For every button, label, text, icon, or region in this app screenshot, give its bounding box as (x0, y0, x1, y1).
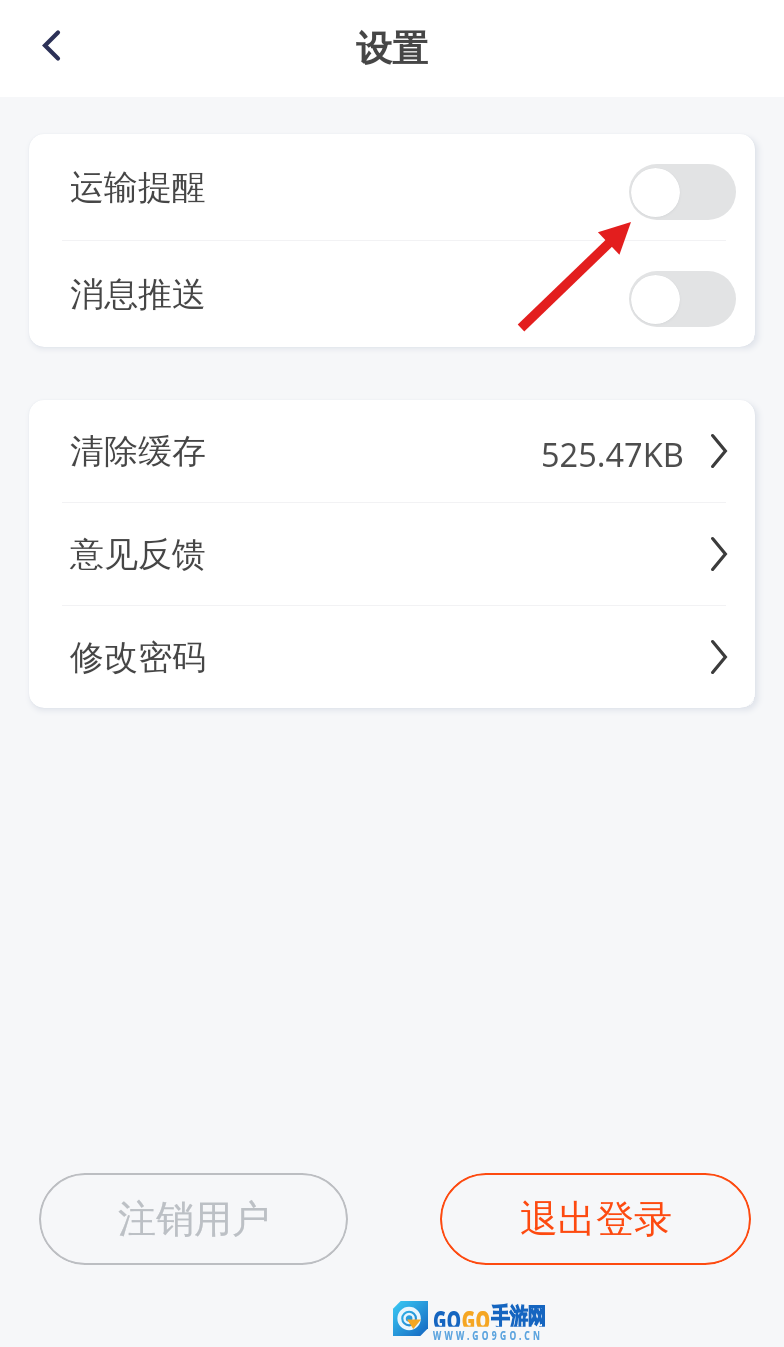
button[interactable]: 运输提醒 (29, 134, 755, 240)
staticText: WWW.GO9GO.CN (433, 1327, 544, 1344)
staticText: 退出登录 (520, 1195, 672, 1243)
button[interactable]: 修改密码 (29, 606, 755, 708)
button[interactable]: 消息推送 (29, 241, 755, 347)
staticText: 手游网 (491, 1301, 546, 1327)
staticText: 清除缓存 (70, 430, 206, 473)
button[interactable]: 意见反馈 (29, 503, 755, 605)
button[interactable]: 清除缓存 (29, 400, 755, 502)
staticText: GO (433, 1301, 462, 1327)
staticText: 525.47KB (541, 432, 684, 476)
staticText: 注销用户 (118, 1195, 270, 1243)
staticText: 运输提醒 (70, 166, 206, 209)
staticText: 消息推送 (70, 273, 206, 316)
staticText: 意见反馈 (70, 533, 206, 576)
staticText: 修改密码 (70, 636, 206, 679)
button[interactable]: 运输提醒 开关 (629, 164, 736, 220)
button[interactable]: Back (20, 21, 76, 77)
button[interactable]: 消息推送 开关 (629, 271, 736, 327)
staticText: GO (462, 1301, 491, 1327)
staticText: 设置 (356, 26, 428, 71)
button[interactable]: 退出登录 (440, 1173, 751, 1265)
button[interactable]: 注销用户 (39, 1173, 348, 1265)
